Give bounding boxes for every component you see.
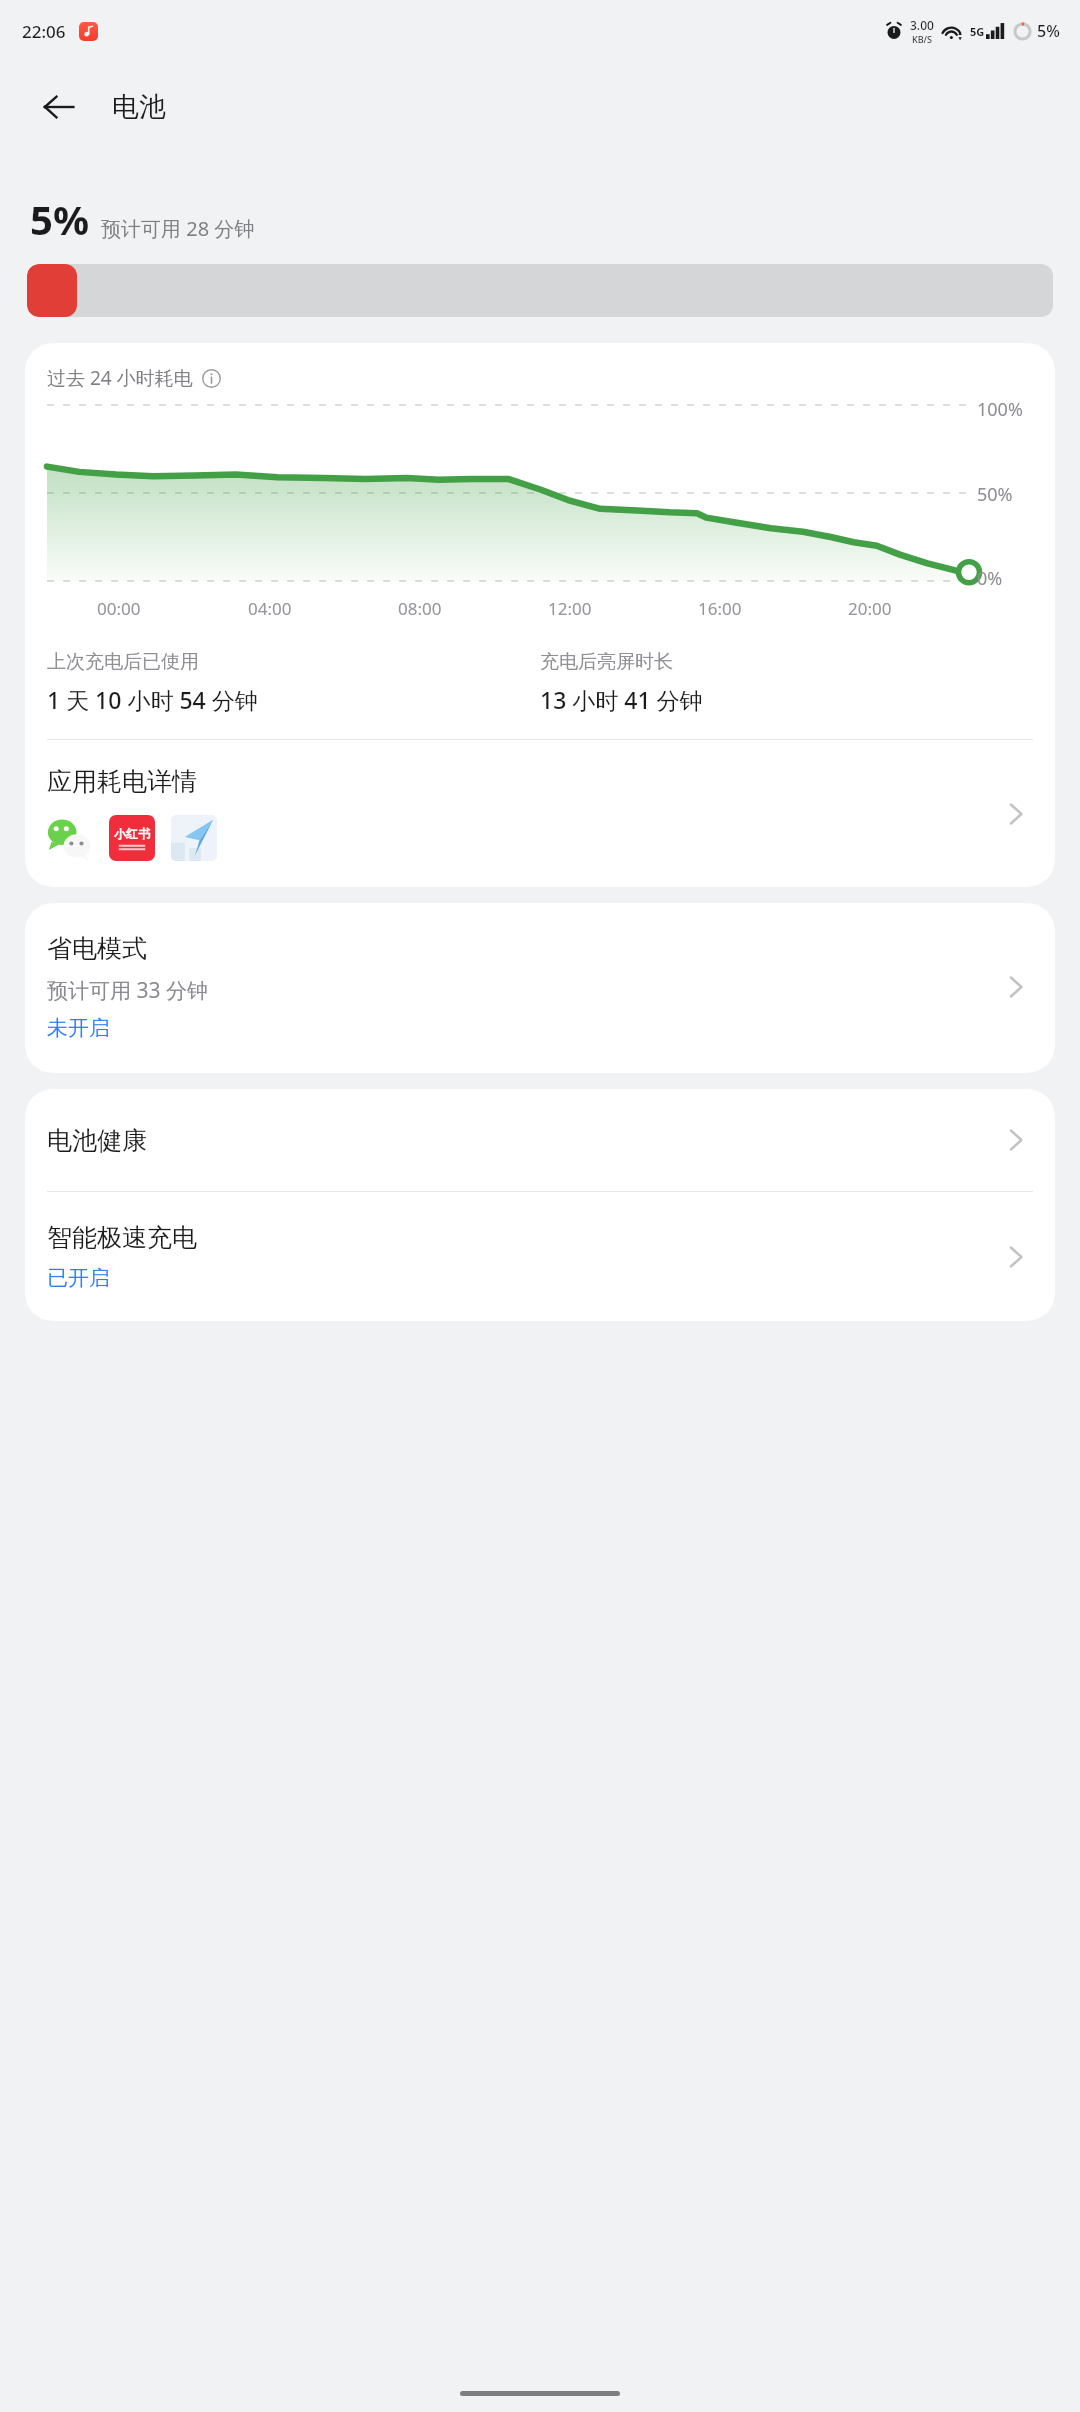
button[interactable]: 省电模式 (25, 903, 1055, 1073)
staticText: KB/S (912, 33, 932, 45)
staticText: 应用耗电详情 (47, 766, 197, 797)
staticText: 充电后亮屏时长 (540, 650, 673, 674)
button[interactable]: 应用耗电详情 (25, 740, 1055, 887)
staticText: 小红书 (114, 826, 150, 841)
staticText: 100% (977, 397, 1023, 422)
staticText: 04:00 (248, 597, 292, 620)
staticText: 0% (977, 566, 1003, 591)
staticText: 00:00 (97, 597, 141, 620)
staticText: 08:00 (398, 597, 442, 620)
staticText: 省电模式 (47, 933, 147, 964)
staticText: 22:06 (22, 20, 66, 43)
staticText: 预计可用 33 分钟 (47, 976, 208, 1005)
staticText: 未开启 (47, 1015, 110, 1041)
staticText: 12:00 (548, 597, 592, 620)
staticText: 智能极速充电 (47, 1222, 197, 1253)
staticText: 5% (30, 192, 89, 246)
staticText: 电池 (112, 90, 166, 124)
staticText: 电池健康 (47, 1125, 999, 1156)
staticText: 13 小时 41 分钟 (540, 684, 703, 715)
staticText: 3.00 (910, 17, 934, 33)
staticText: 过去 24 小时耗电 (47, 365, 193, 391)
staticText: 5% (1037, 20, 1060, 42)
button[interactable]: 电池健康 (25, 1089, 1055, 1191)
staticText: 20:00 (848, 597, 892, 620)
button[interactable]: Back (30, 78, 88, 136)
staticText: 50% (977, 482, 1013, 507)
staticText: 5G (970, 24, 985, 39)
staticText: 1 天 10 小时 54 分钟 (47, 684, 258, 715)
staticText: 上次充电后已使用 (47, 650, 199, 674)
staticText: 16:00 (698, 597, 742, 620)
staticText: 预计可用 28 分钟 (101, 215, 255, 242)
staticText: 已开启 (47, 1265, 110, 1291)
button[interactable]: 智能极速充电 (25, 1192, 1055, 1321)
